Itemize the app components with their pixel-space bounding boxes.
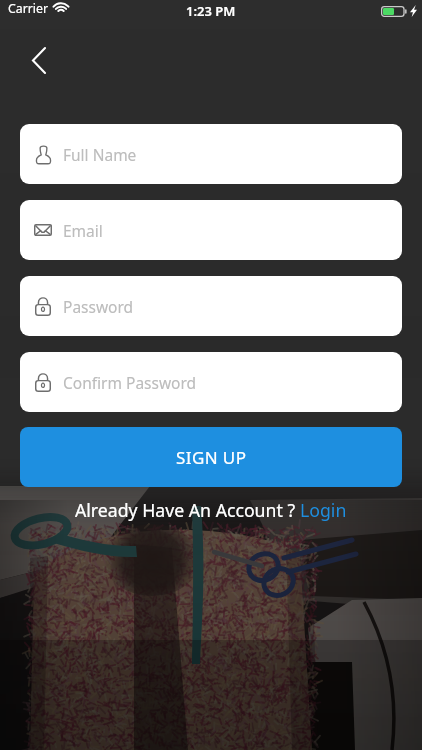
staticText: Confirm Password — [63, 372, 197, 393]
staticText: Already Have An Account ? — [75, 498, 300, 522]
staticText: Password — [63, 296, 134, 317]
button[interactable]: Login — [300, 498, 347, 522]
button[interactable]: Email — [20, 200, 402, 260]
button[interactable]: Back — [19, 40, 59, 80]
button[interactable]: SIGN UP — [20, 427, 402, 487]
staticText: Email — [63, 220, 103, 241]
button[interactable]: Confirm Password — [20, 352, 402, 412]
button[interactable]: Full Name — [20, 124, 402, 184]
staticText: 1:23 PM — [186, 2, 236, 20]
button[interactable]: Password — [20, 276, 402, 336]
staticText: Full Name — [63, 144, 137, 165]
staticText: Carrier — [8, 0, 49, 17]
staticText: SIGN UP — [176, 446, 247, 469]
staticText: Login — [300, 498, 347, 522]
